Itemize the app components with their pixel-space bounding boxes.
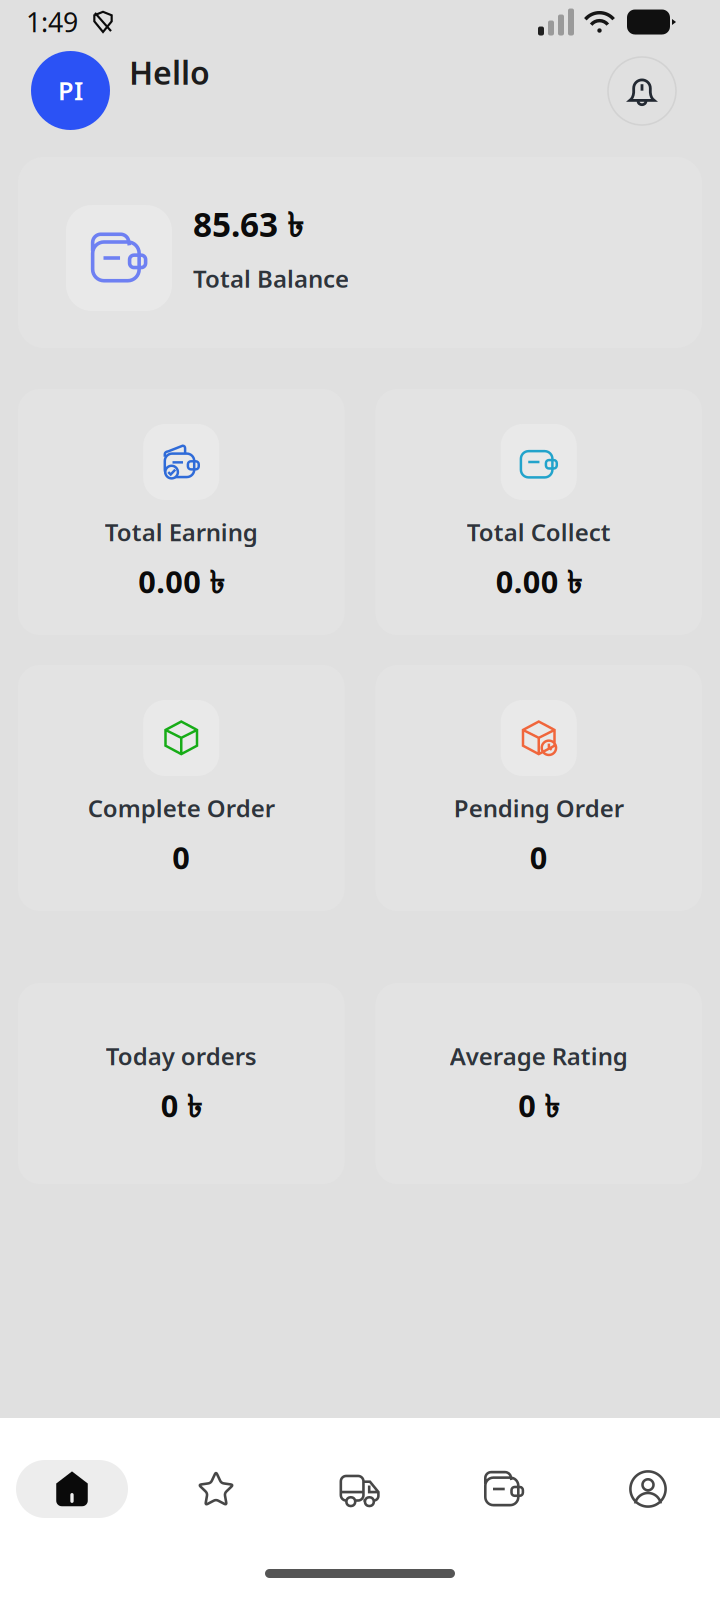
button[interactable]: Deliveries [304, 1460, 416, 1518]
button[interactable]: Home [16, 1460, 128, 1518]
button[interactable]: Profile [592, 1460, 704, 1518]
button[interactable]: 85.63 ৳ [18, 157, 702, 348]
staticText: Hello [129, 51, 210, 93]
staticText: 0 [172, 837, 190, 878]
staticText: 1:49 [26, 4, 78, 40]
staticText: Total Balance [193, 263, 349, 294]
button[interactable]: Pending Order [375, 665, 702, 911]
button[interactable]: Today orders [18, 983, 344, 1184]
button[interactable]: Wallet [448, 1460, 560, 1518]
button[interactable]: Average Rating [375, 983, 702, 1184]
staticText: PI [58, 74, 83, 107]
staticText: 0 ৳ [518, 1085, 559, 1130]
staticText: 0 ৳ [161, 1085, 202, 1130]
staticText: 0 [530, 837, 548, 878]
button[interactable]: Notifications [608, 57, 676, 125]
staticText: Today orders [106, 1040, 257, 1072]
staticText: 85.63 ৳ [193, 202, 304, 251]
staticText: 0.00 ৳ [138, 561, 224, 606]
button[interactable]: Favourites [160, 1460, 272, 1518]
staticText: Pending Order [454, 792, 624, 824]
staticText: Total Collect [467, 516, 611, 548]
button[interactable]: Profile [31, 51, 110, 130]
staticText: Total Earning [105, 516, 258, 548]
button[interactable]: Complete Order [18, 665, 344, 911]
button[interactable]: Total Collect [375, 389, 702, 635]
staticText: Average Rating [450, 1040, 628, 1072]
staticText: 0.00 ৳ [496, 561, 582, 606]
button[interactable]: Total Earning [18, 389, 344, 635]
staticText: Complete Order [88, 792, 275, 824]
